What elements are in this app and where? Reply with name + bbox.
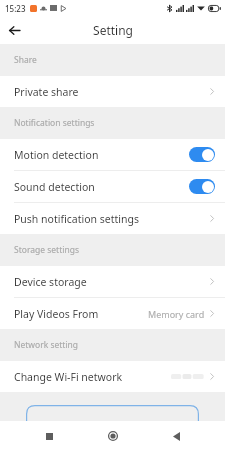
staticText: Device storage xyxy=(14,275,87,289)
staticText: 15:23 xyxy=(5,3,26,14)
staticText: Change Wi-Fi network xyxy=(14,370,123,384)
staticText: Play Videos From xyxy=(14,307,99,321)
staticText: Network setting xyxy=(14,339,79,351)
staticText: Storage settings xyxy=(14,244,79,256)
staticText: Share xyxy=(14,54,37,66)
button[interactable]: Play Videos From xyxy=(0,298,225,329)
button[interactable]: Recents xyxy=(35,422,63,450)
staticText: Sound detection xyxy=(14,180,95,194)
button[interactable]: Private share xyxy=(0,76,225,107)
button[interactable]: Action button xyxy=(26,405,199,421)
button[interactable]: Motion detection xyxy=(0,139,225,170)
button[interactable]: Motion detection switch xyxy=(189,147,215,162)
staticText: Setting xyxy=(93,22,133,38)
staticText: Push notification settings xyxy=(14,212,139,226)
button[interactable]: Back xyxy=(162,422,190,450)
staticText: Private share xyxy=(14,85,79,99)
staticText: Notification settings xyxy=(14,117,95,129)
button[interactable]: Change Wi-Fi network xyxy=(0,361,225,392)
button[interactable]: Sound detection xyxy=(0,171,225,202)
staticText: Memory card xyxy=(148,308,205,320)
button[interactable]: Push notification settings xyxy=(0,203,225,234)
button[interactable]: Sound detection switch xyxy=(189,179,215,194)
button[interactable]: Device storage xyxy=(0,266,225,297)
staticText: Motion detection xyxy=(14,148,99,162)
button[interactable]: Back xyxy=(0,16,28,44)
button[interactable]: Home xyxy=(99,422,127,450)
